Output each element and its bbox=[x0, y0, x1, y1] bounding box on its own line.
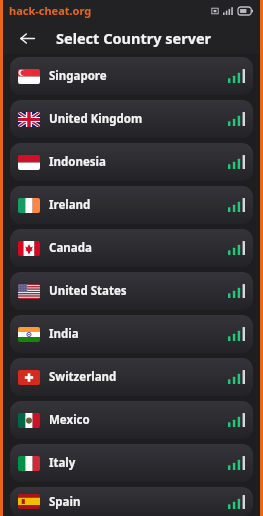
staticText: Singapore bbox=[49, 68, 107, 84]
button[interactable]: Ireland bbox=[10, 186, 253, 224]
staticText: Italy bbox=[49, 455, 76, 471]
button[interactable]: Mexico bbox=[10, 401, 253, 439]
staticText: Spain bbox=[49, 494, 81, 510]
staticText: Switzerland bbox=[49, 369, 117, 385]
button[interactable]: Switzerland bbox=[10, 358, 253, 396]
staticText: Canada bbox=[49, 240, 92, 256]
staticText: United States bbox=[49, 283, 127, 299]
button[interactable]: United States bbox=[10, 272, 253, 310]
staticText: hack-cheat.org bbox=[9, 3, 92, 18]
button[interactable]: United Kingdom bbox=[10, 100, 253, 138]
staticText: Select Country server bbox=[56, 28, 212, 48]
button[interactable]: Indonesia bbox=[10, 143, 253, 181]
button[interactable]: India bbox=[10, 315, 253, 353]
staticText: India bbox=[49, 326, 79, 342]
button[interactable]: Back bbox=[15, 26, 39, 50]
staticText: Mexico bbox=[49, 412, 90, 428]
button[interactable]: Spain bbox=[10, 487, 253, 516]
staticText: United Kingdom bbox=[49, 111, 143, 127]
staticText: Indonesia bbox=[49, 154, 106, 170]
button[interactable]: Singapore bbox=[10, 57, 253, 95]
button[interactable]: Canada bbox=[10, 229, 253, 267]
staticText: Ireland bbox=[49, 197, 91, 213]
button[interactable]: Italy bbox=[10, 444, 253, 482]
